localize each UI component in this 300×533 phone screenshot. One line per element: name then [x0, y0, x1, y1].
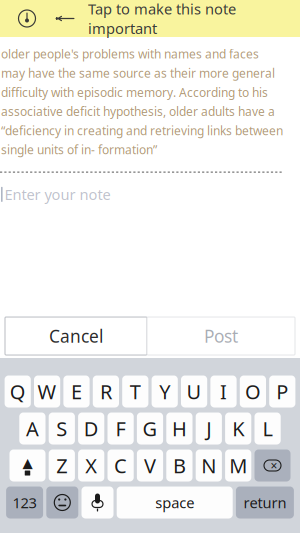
button[interactable]: F: [107, 412, 134, 444]
staticText: P: [276, 378, 288, 405]
button[interactable]: 123: [6, 486, 43, 518]
button[interactable]: Emoji: [46, 486, 78, 518]
button[interactable]: A: [19, 412, 45, 444]
button[interactable]: Reminder: [12, 3, 42, 33]
staticText: D: [84, 415, 99, 442]
staticText: ▲: [22, 455, 32, 470]
button[interactable]: Dictate: [81, 486, 113, 518]
button[interactable]: O: [240, 375, 266, 407]
button[interactable]: Back: [48, 3, 82, 33]
button[interactable]: G: [137, 412, 163, 444]
button[interactable]: T: [122, 375, 148, 407]
button[interactable]: C: [107, 449, 134, 481]
staticText: return: [243, 493, 286, 512]
staticText: Y: [159, 378, 170, 405]
staticText: J: [206, 415, 211, 442]
staticText: I: [220, 378, 227, 405]
staticText: space: [155, 493, 194, 512]
button[interactable]: N: [196, 449, 222, 481]
staticText: L: [263, 415, 273, 442]
button[interactable]: Post: [147, 317, 295, 355]
button[interactable]: return: [236, 486, 294, 518]
button[interactable]: D: [78, 412, 104, 444]
staticText: N: [201, 452, 216, 479]
staticText: M: [229, 452, 247, 479]
button[interactable]: B: [166, 449, 192, 481]
button[interactable]: S: [49, 412, 75, 444]
staticText: W: [38, 378, 57, 405]
staticText: T: [130, 378, 141, 405]
button[interactable]: I: [210, 375, 237, 407]
button[interactable]: M: [225, 449, 251, 481]
button[interactable]: J: [196, 412, 222, 444]
staticText: Q: [10, 378, 26, 405]
button[interactable]: U: [181, 375, 207, 407]
staticText: R: [100, 378, 112, 405]
staticText: S: [56, 415, 67, 442]
button[interactable]: V: [137, 449, 163, 481]
button[interactable]: W: [34, 375, 60, 407]
button[interactable]: Cancel: [5, 317, 147, 355]
staticText: 123: [13, 493, 37, 512]
staticText: older people's problems with names and f…: [1, 46, 283, 158]
button[interactable]: H: [166, 412, 192, 444]
staticText: Enter your note: [5, 185, 111, 204]
staticText: H: [172, 415, 187, 442]
staticText: K: [232, 415, 244, 442]
staticText: E: [71, 378, 82, 405]
button[interactable]: Delete: [254, 449, 290, 481]
staticText: Tap to make this note important: [88, 0, 236, 38]
button[interactable]: E: [63, 375, 90, 407]
button[interactable]: P: [269, 375, 295, 407]
staticText: C: [114, 452, 127, 479]
staticText: O: [245, 378, 261, 405]
button[interactable]: Z: [49, 449, 75, 481]
staticText: X: [85, 452, 97, 479]
button[interactable]: R: [93, 375, 119, 407]
staticText: U: [187, 378, 202, 405]
button[interactable]: space: [117, 486, 233, 518]
button[interactable]: Q: [5, 375, 31, 407]
button[interactable]: X: [78, 449, 104, 481]
button[interactable]: Shift: [9, 449, 45, 481]
button[interactable]: Tap to make this note important: [82, 3, 236, 33]
staticText: G: [142, 415, 157, 442]
staticText: B: [173, 452, 186, 479]
staticText: F: [116, 415, 126, 442]
staticText: Post: [204, 324, 238, 347]
staticText: Cancel: [49, 324, 103, 347]
button[interactable]: Y: [152, 375, 178, 407]
staticText: Z: [56, 452, 67, 479]
staticText: A: [26, 415, 39, 442]
button[interactable]: K: [225, 412, 251, 444]
staticText: ×: [270, 457, 277, 473]
button[interactable]: L: [254, 412, 281, 444]
staticText: V: [144, 452, 156, 479]
